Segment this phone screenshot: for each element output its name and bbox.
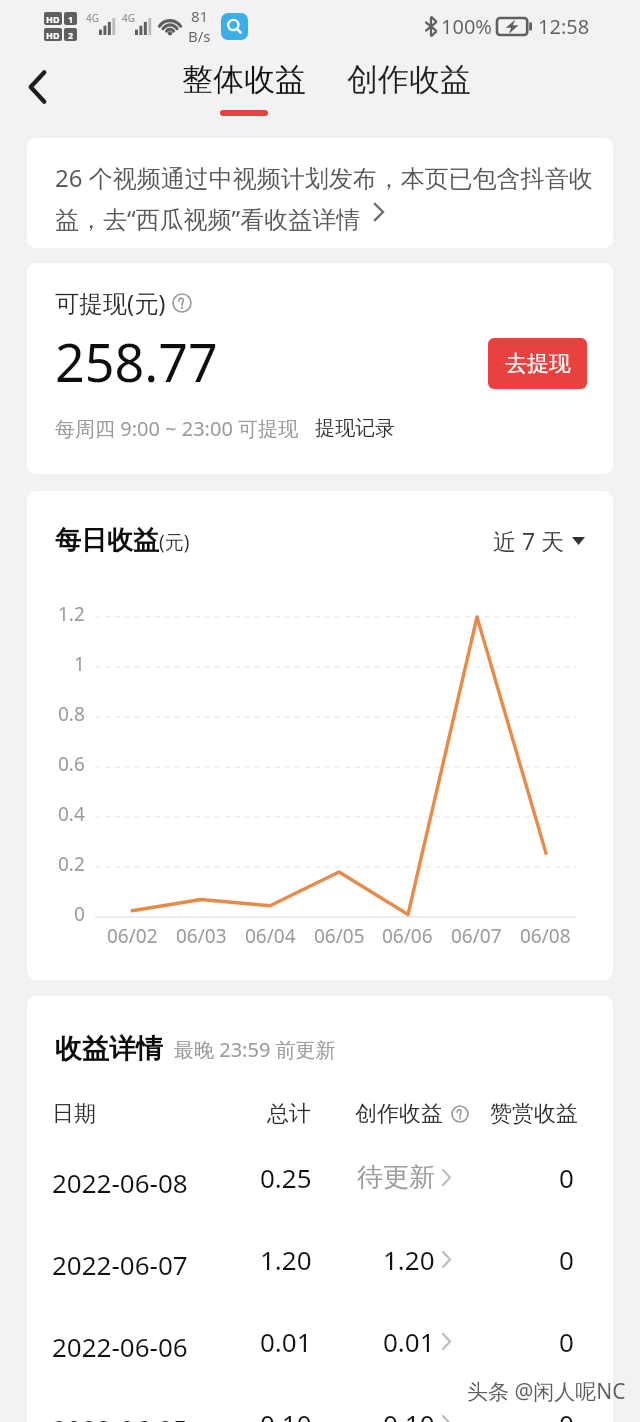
staticText: 0.01 xyxy=(383,1324,435,1359)
staticText: 06/04 xyxy=(245,923,296,949)
staticText: 0.10 xyxy=(260,1406,312,1422)
staticText: 100% xyxy=(441,13,492,40)
button[interactable]: 2022-06-08 xyxy=(27,1136,613,1218)
staticText: 258.77 xyxy=(55,326,218,397)
staticText: 收益详情 xyxy=(55,1032,163,1066)
staticText: 0 xyxy=(559,1406,574,1422)
staticText: 06/06 xyxy=(382,923,433,949)
staticText: B/s xyxy=(188,26,211,46)
staticText: 整体收益 xyxy=(182,60,306,99)
staticText: HD xyxy=(46,13,60,25)
staticText: 0.01 xyxy=(260,1324,312,1359)
staticText: 2022-06-08 xyxy=(52,1165,188,1200)
staticText: 1 xyxy=(74,651,85,677)
staticText: 创作收益 xyxy=(347,60,471,99)
button[interactable]: 2022-06-06 xyxy=(27,1300,613,1382)
staticText: 0.8 xyxy=(58,701,85,727)
staticText: 2 xyxy=(68,29,74,41)
staticText: 2022-06-07 xyxy=(52,1247,188,1282)
staticText: 总计 xyxy=(267,1100,311,1128)
staticText: 去提现 xyxy=(505,350,571,378)
staticText: 0 xyxy=(559,1324,574,1359)
staticText: 1.20 xyxy=(260,1242,312,1277)
staticText: 近 7 天 xyxy=(493,525,565,556)
staticText: 创作收益 xyxy=(355,1100,443,1128)
staticText: 06/08 xyxy=(520,923,571,949)
staticText: 每日收益 xyxy=(55,524,159,557)
button[interactable]: Back xyxy=(10,60,64,114)
staticText: 0.2 xyxy=(58,851,85,877)
button[interactable]: 2022-06-05 xyxy=(27,1382,613,1422)
staticText: 提现记录 xyxy=(315,416,395,441)
staticText: 2022-06-05 xyxy=(52,1411,188,1422)
staticText: 0.6 xyxy=(58,751,85,777)
button[interactable]: 2022-06-07 xyxy=(27,1218,613,1300)
button[interactable]: 创作收益 xyxy=(347,60,471,99)
staticText: 26 个视频通过中视频计划发布，本页已包含抖音收益，去“西瓜视频”看收益详情 xyxy=(55,161,596,235)
staticText: 可提现(元) xyxy=(55,286,166,319)
staticText: 0.10 xyxy=(383,1406,435,1422)
staticText: 06/07 xyxy=(451,923,502,949)
staticText: 4G xyxy=(122,11,135,25)
button[interactable]: 近 7 天 xyxy=(493,525,585,556)
button[interactable]: 整体收益 xyxy=(182,60,306,116)
staticText: 待更新 xyxy=(357,1161,435,1194)
staticText: 0 xyxy=(74,901,85,927)
button[interactable]: Search xyxy=(221,13,248,40)
button[interactable]: 26 个视频通过中视频计划发布，本页已包含抖音收益，去“西瓜视频”看收益详情 xyxy=(27,138,613,248)
staticText: 06/03 xyxy=(176,923,227,949)
staticText: 赞赏收益 xyxy=(490,1100,578,1128)
staticText: 1.2 xyxy=(58,601,85,627)
staticText: 4G xyxy=(86,11,99,25)
button[interactable]: 去提现 xyxy=(488,338,587,389)
staticText: (元) xyxy=(159,529,190,555)
staticText: 每周四 9:00 ~ 23:00 可提现 xyxy=(55,415,299,442)
staticText: HD xyxy=(46,29,60,41)
staticText: 06/05 xyxy=(314,923,365,949)
staticText: 0.25 xyxy=(260,1160,312,1195)
staticText: 81 xyxy=(191,6,209,26)
staticText: 0 xyxy=(559,1242,574,1277)
staticText: 12:58 xyxy=(538,13,590,40)
staticText: 最晚 23:59 前更新 xyxy=(174,1036,336,1063)
staticText: 06/02 xyxy=(107,923,158,949)
staticText: 0.4 xyxy=(58,801,85,827)
staticText: 2022-06-06 xyxy=(52,1329,188,1364)
staticText: 日期 xyxy=(52,1100,96,1128)
button[interactable]: 提现记录 xyxy=(315,416,395,441)
staticText: 1.20 xyxy=(383,1242,435,1277)
staticText: 0 xyxy=(559,1160,574,1195)
staticText: 1 xyxy=(68,13,74,25)
staticText: 头条 @闲人呢NC xyxy=(467,1377,626,1406)
